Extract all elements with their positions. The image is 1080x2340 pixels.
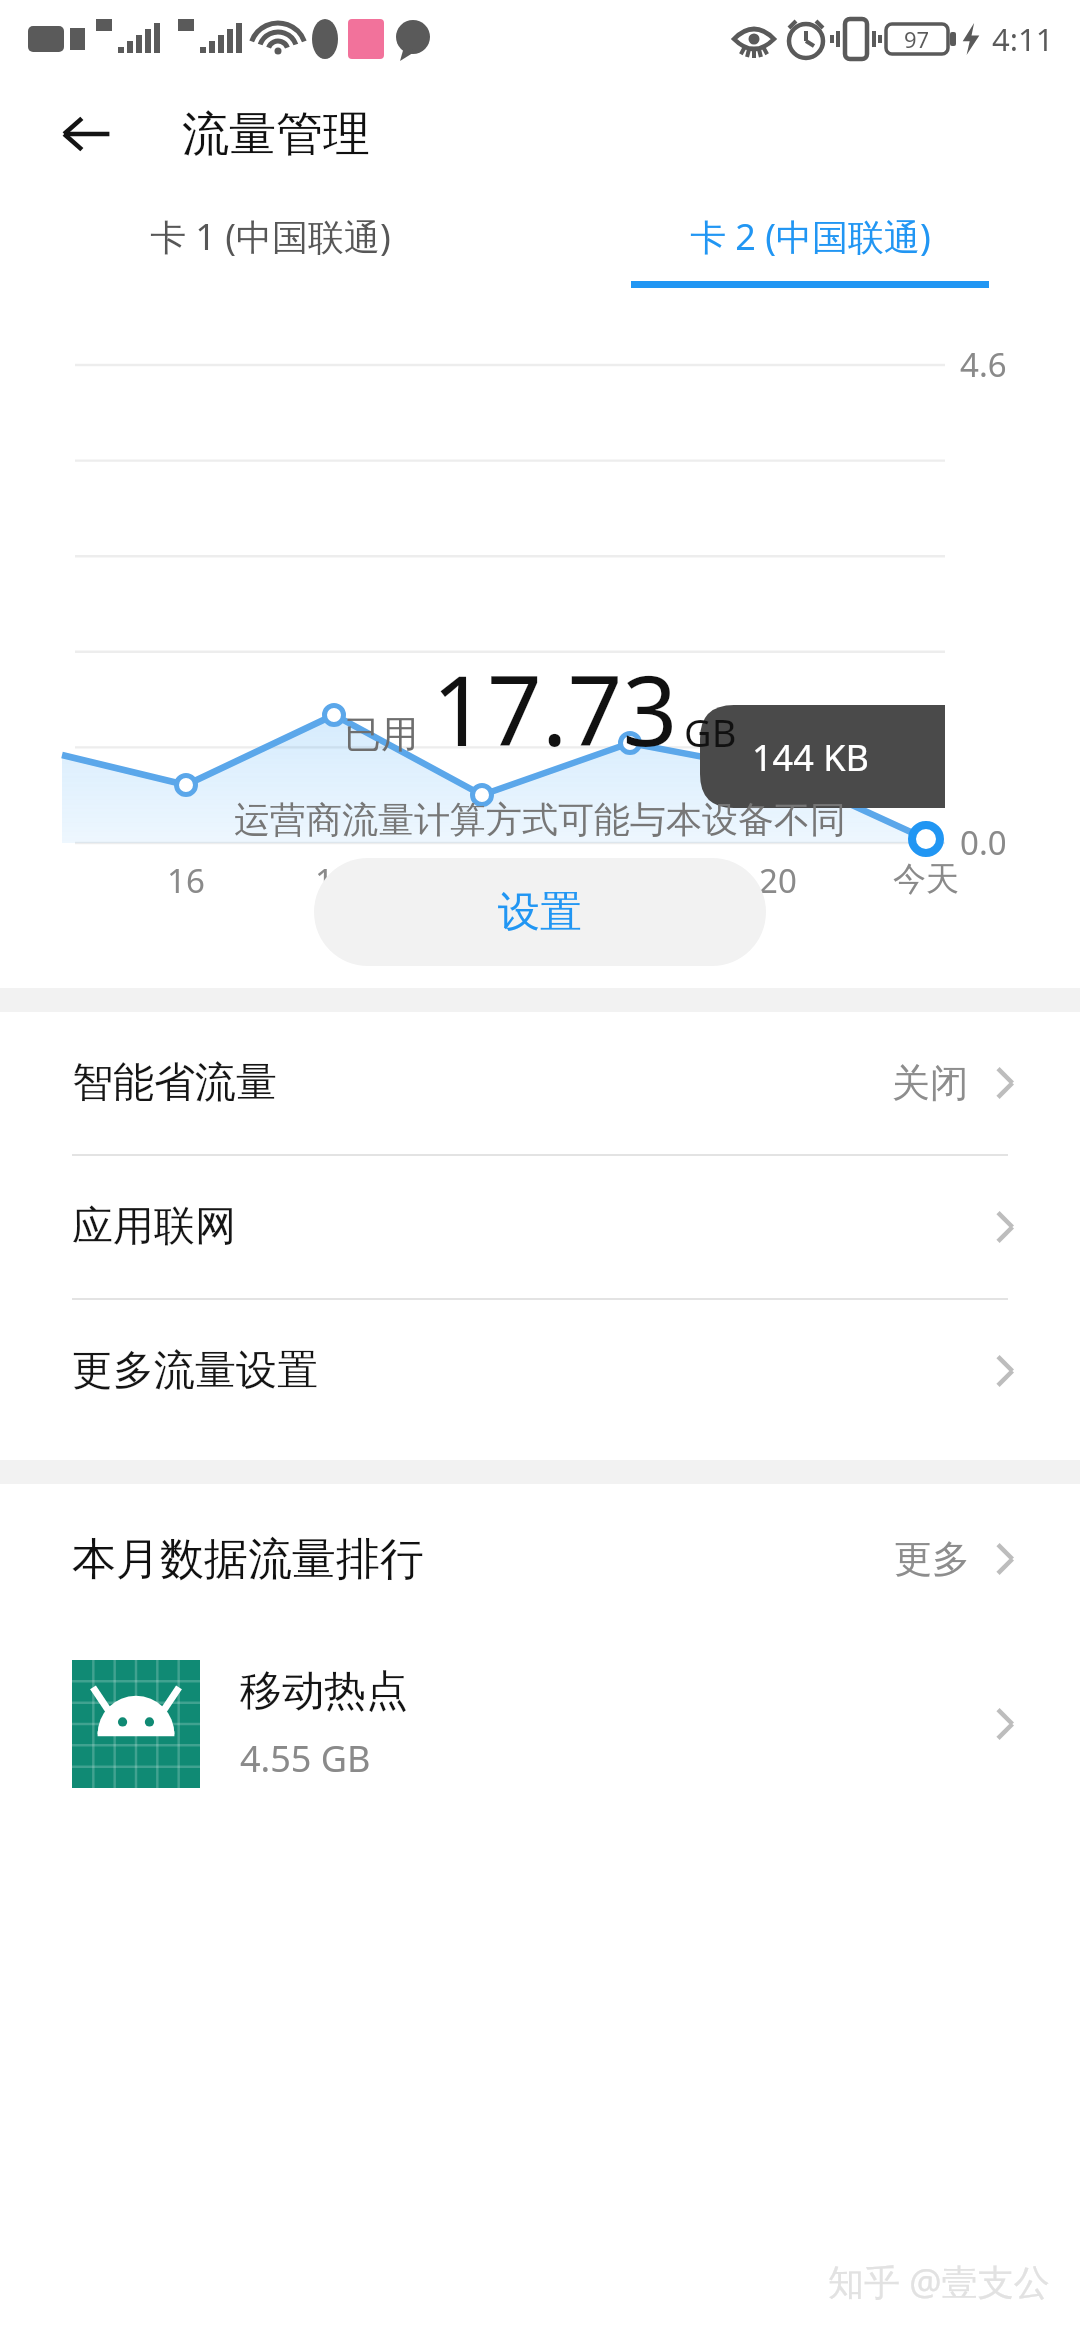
staticText: 本月数据流量排行 (72, 1532, 424, 1587)
staticText: 0.0 (960, 820, 1007, 865)
staticText: 4:11 (992, 18, 1054, 60)
staticText: 144 KB (752, 733, 869, 782)
button[interactable]: 设置 (314, 858, 766, 966)
staticText: 20 (759, 858, 797, 903)
staticText: 17 (315, 858, 353, 903)
staticText: 更多 (894, 1535, 970, 1583)
staticText: 16 (167, 858, 205, 903)
staticText: 卡 2 (中国联通) (690, 212, 931, 261)
button[interactable]: 本月数据流量排行 (0, 1484, 1080, 1634)
staticText: GB (684, 706, 737, 758)
button[interactable]: 卡 2 (中国联通) (540, 190, 1080, 320)
staticText: 已用 (344, 711, 418, 758)
staticText: 4.55 GB (240, 1734, 371, 1783)
staticText: 关闭 (892, 1059, 968, 1107)
button[interactable]: 卡 1 (中国联通) (0, 190, 540, 320)
staticText: 4.6 (960, 342, 1007, 387)
button[interactable]: 智能省流量 (0, 1012, 1080, 1154)
staticText: 17.73 (432, 643, 678, 774)
staticText: 智能省流量 (72, 1057, 277, 1109)
button[interactable]: 移动热点 (0, 1634, 1080, 1814)
button[interactable]: 更多流量设置 (0, 1300, 1080, 1442)
staticText: 流量管理 (182, 105, 370, 164)
staticText: 97 (904, 24, 930, 54)
staticText: 卡 1 (中国联通) (150, 212, 391, 261)
staticText: 今天 (893, 858, 959, 900)
staticText: 移动热点 (240, 1665, 408, 1718)
staticText: 设置 (498, 886, 582, 939)
button[interactable]: Back (48, 96, 124, 172)
button[interactable]: 应用联网 (0, 1156, 1080, 1298)
staticText: 更多流量设置 (72, 1345, 318, 1397)
staticText: 运营商流量计算方式可能与本设备不同 (234, 797, 846, 842)
staticText: 应用联网 (72, 1201, 236, 1253)
staticText: 知乎 @壹支公 (828, 2257, 1050, 2306)
